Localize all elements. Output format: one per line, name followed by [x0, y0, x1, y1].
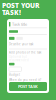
staticText: Budget [9, 73, 20, 76]
staticText: When do you need it? [9, 78, 41, 82]
button[interactable]: POST TASK [9, 82, 47, 91]
staticText: TASK! [2, 8, 21, 17]
staticText: POST YOUR [2, 1, 40, 10]
staticText: Optional but recommended [9, 55, 29, 62]
staticText: POST TASK [18, 84, 38, 89]
staticText: Add photos of the task [9, 51, 41, 54]
staticText: Task title [12, 22, 27, 27]
staticText: Describe your task [9, 42, 33, 46]
